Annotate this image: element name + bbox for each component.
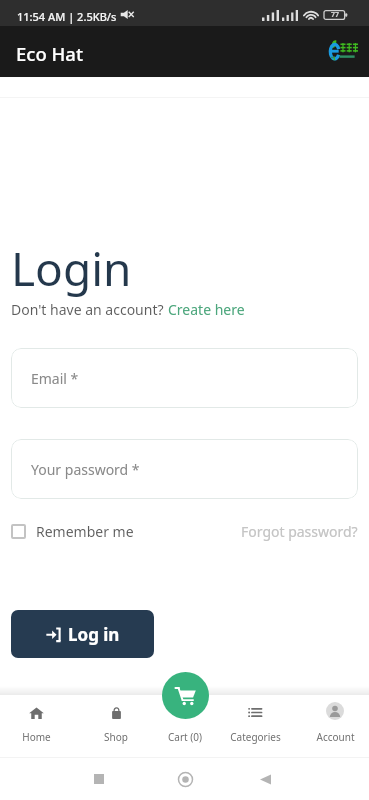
button[interactable]: Cart bbox=[162, 672, 209, 719]
button[interactable]: Log in bbox=[11, 610, 154, 658]
button[interactable]: Home bbox=[177, 758, 194, 800]
staticText: Cart (0) bbox=[168, 730, 202, 744]
staticText: Shop bbox=[104, 730, 128, 744]
staticText: Don't have an account? bbox=[11, 300, 168, 319]
button[interactable]: Your password * bbox=[11, 439, 358, 499]
button[interactable]: Eco Hat logo bbox=[325, 38, 363, 64]
staticText: Login bbox=[11, 237, 132, 300]
button[interactable]: Create here bbox=[168, 300, 245, 319]
staticText: Remember me bbox=[36, 522, 134, 541]
button[interactable]: Account bbox=[300, 686, 369, 757]
button[interactable]: Categories bbox=[220, 686, 290, 757]
button[interactable]: Email * bbox=[11, 348, 358, 408]
staticText: 77 bbox=[331, 10, 340, 20]
button[interactable]: Remember me bbox=[11, 522, 134, 541]
staticText: 11:54 AM | 2.5KB/s bbox=[17, 9, 117, 24]
staticText: Your password * bbox=[31, 460, 140, 479]
button[interactable]: Back bbox=[259, 758, 272, 800]
staticText: Eco Hat bbox=[16, 41, 84, 66]
button[interactable]: Shop bbox=[81, 686, 151, 757]
button[interactable]: Recents bbox=[93, 758, 105, 800]
button[interactable]: Home bbox=[1, 686, 71, 757]
button[interactable]: Cart (0) bbox=[150, 686, 220, 757]
staticText: Account bbox=[316, 730, 355, 744]
staticText: Email * bbox=[31, 369, 79, 388]
button[interactable]: Forgot password? bbox=[241, 522, 358, 541]
staticText: Home bbox=[22, 730, 51, 744]
staticText: Log in bbox=[68, 623, 120, 646]
staticText: Categories bbox=[230, 730, 281, 744]
